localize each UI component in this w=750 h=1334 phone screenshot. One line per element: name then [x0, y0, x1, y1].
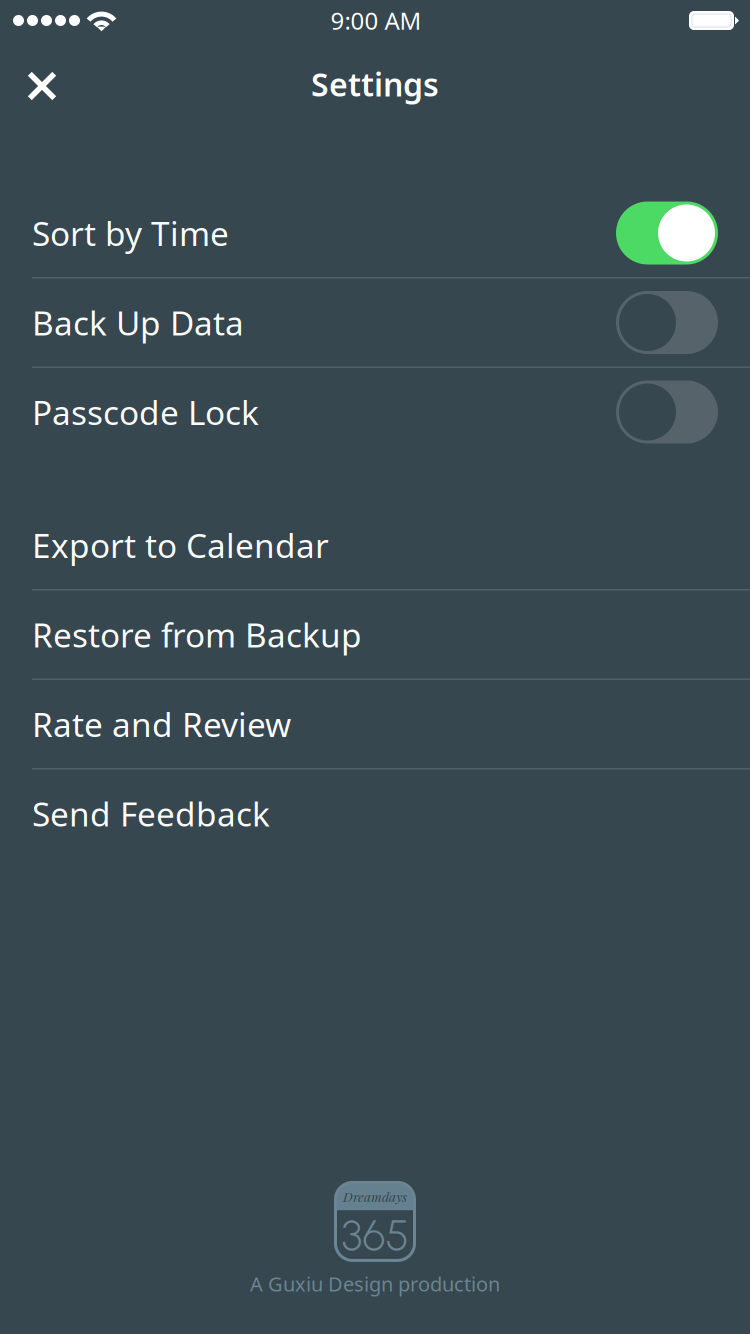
staticText: Sort by Time [32, 211, 229, 255]
button[interactable]: Close [0, 41, 84, 107]
staticText: Back Up Data [32, 300, 244, 345]
staticText: 365 [341, 1210, 408, 1261]
staticText: Restore from Backup [32, 612, 362, 657]
staticText: Rate and Review [32, 702, 291, 746]
staticText: Settings [311, 63, 439, 105]
staticText: Passcode Lock [32, 390, 259, 434]
staticText: Export to Calendar [32, 523, 329, 567]
button[interactable]: Passcode Lock [0, 368, 750, 456]
button[interactable]: Back Up Data [0, 278, 750, 366]
button[interactable]: Sort by Time [0, 189, 750, 277]
button[interactable]: Send Feedback [0, 769, 750, 857]
staticText: 9:00 AM [330, 5, 421, 36]
staticText: Send Feedback [32, 791, 270, 836]
button[interactable]: Restore from Backup [0, 590, 750, 678]
staticText: Dreamdays [343, 1188, 407, 1205]
button[interactable]: Export to Calendar [0, 501, 750, 589]
staticText: A Guxiu Design production [250, 1270, 500, 1297]
button[interactable]: Rate and Review [0, 680, 750, 768]
